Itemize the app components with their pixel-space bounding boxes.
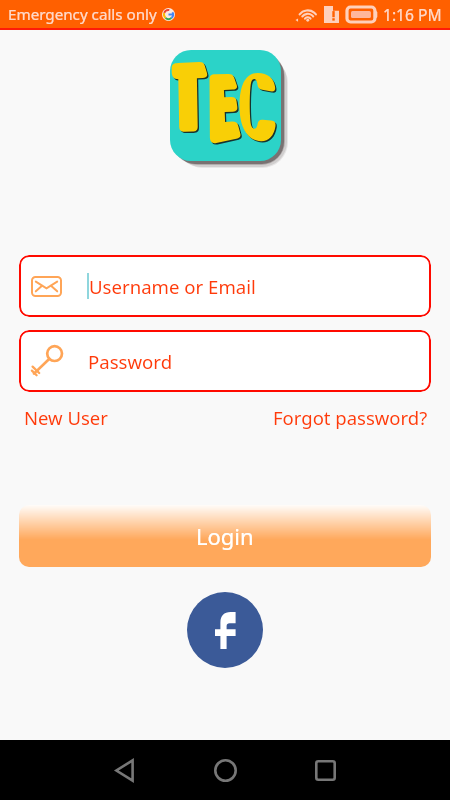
staticText: Password [88,349,173,374]
button[interactable]: Password [19,330,431,392]
staticText: Emergency calls only [8,4,157,25]
button[interactable]: Back [100,746,148,794]
button[interactable]: New User [21,398,111,437]
staticText: 1:16 PM [383,4,442,25]
button[interactable]: Home [201,746,249,794]
button[interactable]: Sign in with Facebook [187,592,263,668]
button[interactable]: Username or Email [19,255,431,317]
button[interactable]: TEC logo [170,50,281,161]
staticText: Username or Email [89,274,256,299]
staticText: Login [196,521,254,551]
staticText: New User [24,405,108,430]
button[interactable]: Login [19,505,431,567]
staticText: Forgot password? [273,405,428,430]
button[interactable]: Forgot password? [272,398,429,437]
button[interactable]: Recents [301,746,349,794]
